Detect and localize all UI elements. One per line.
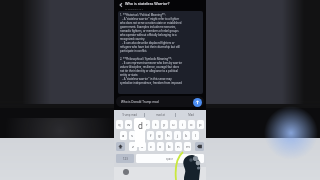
button[interactable]: Back (117, 1, 125, 9)
button[interactable]: r (143, 120, 150, 129)
staticText: b (168, 144, 171, 150)
staticText: recognized country. (120, 37, 145, 41)
staticText: nomadic fighters, or members of rebel gr… (120, 29, 179, 33)
button[interactable]: Send (193, 98, 202, 107)
staticText: v (159, 144, 162, 150)
staticText: - It can also describe displaced fighter… (120, 41, 175, 45)
staticText: - A "stateless warrior" might refer to a… (120, 17, 180, 21)
staticText: values (discipline, resilience, courage)… (120, 65, 180, 69)
button[interactable]: e (134, 120, 141, 129)
button[interactable]: b (166, 142, 173, 151)
staticText: t (155, 122, 157, 128)
button[interactable]: 123 (116, 154, 134, 163)
staticText: z (132, 144, 134, 150)
staticText: e (136, 122, 139, 128)
button[interactable]: n (175, 142, 182, 151)
staticText: w (127, 122, 131, 128)
staticText: u (172, 122, 175, 128)
staticText: entity or state. (120, 73, 139, 77)
button[interactable]: y (161, 120, 168, 129)
staticText: not tie their identity or allegiance to … (120, 69, 178, 73)
button[interactable]: h (165, 131, 172, 140)
staticText: q (118, 122, 121, 128)
button[interactable]: i (179, 120, 186, 129)
button[interactable]: k (183, 131, 190, 140)
staticText: m (186, 144, 190, 150)
staticText: space (166, 157, 174, 161)
staticText: k (185, 133, 188, 139)
staticText: p (199, 122, 202, 128)
staticText: r (146, 122, 148, 128)
button[interactable]: a (120, 131, 127, 140)
button[interactable]: p (197, 120, 204, 129)
button[interactable]: t (152, 120, 159, 129)
staticText: a (122, 133, 125, 139)
staticText: x (141, 144, 144, 150)
button[interactable]: j (174, 131, 181, 140)
staticText: Trump mad (122, 113, 137, 117)
staticText: i (182, 122, 184, 128)
staticText: mad at (156, 113, 165, 117)
staticText: AI assistant v2.4 (125, 7, 144, 10)
staticText: h (167, 133, 170, 139)
staticText: l (195, 133, 197, 139)
button[interactable]: v (157, 142, 164, 151)
button[interactable]: f (147, 131, 154, 140)
staticText: 1. **Historical / Political Meaning**: (120, 13, 166, 17)
staticText: who operate without officially belonging… (120, 33, 177, 37)
staticText: g (158, 133, 161, 139)
button[interactable]: Mad (176, 110, 206, 119)
button[interactable]: Trump mad (114, 110, 144, 119)
staticText: government. Examples include mercenaries… (120, 25, 176, 29)
staticText: Who is Donald Trump mad (121, 100, 159, 104)
staticText: 2. **Philosophical / Symbolic Meaning**: (120, 57, 172, 61)
staticText: participate in conflict. (120, 49, 148, 53)
staticText: c (150, 144, 153, 150)
staticText: Mad (188, 113, 194, 117)
button[interactable]: m (184, 142, 191, 151)
staticText: f (150, 133, 152, 139)
staticText: n (177, 144, 180, 150)
button[interactable]: Shift (116, 142, 125, 151)
button[interactable]: s (129, 131, 136, 140)
button[interactable]: o (188, 120, 195, 129)
button[interactable]: u (170, 120, 177, 129)
button[interactable]: x (139, 142, 146, 151)
button[interactable]: space (136, 154, 204, 163)
button[interactable]: l (192, 131, 199, 140)
staticText: symbolize independence, freedom from imp… (120, 81, 182, 85)
staticText: o (190, 122, 193, 128)
staticText: Who is stateless Warrior? (125, 1, 170, 6)
staticText: d (138, 120, 143, 131)
staticText: j (177, 133, 179, 139)
button[interactable]: Backspace (195, 142, 204, 151)
staticText: - A "stateless warrior" in this sense ma… (120, 77, 172, 81)
staticText: 123 (123, 157, 128, 161)
button[interactable]: z (129, 142, 137, 151)
staticText: y (163, 122, 166, 128)
button[interactable]: mad at (145, 110, 175, 119)
staticText: - It can represent someone who lives by … (120, 61, 183, 65)
button[interactable]: q (116, 120, 123, 129)
button[interactable]: c (148, 142, 155, 151)
staticText: s (131, 133, 134, 139)
button[interactable]: 1. **Historical / Political Meaning**: (118, 11, 203, 94)
button[interactable]: w (125, 120, 132, 129)
button[interactable] (116, 96, 204, 107)
staticText: refugees who have lost their citizenship… (120, 45, 180, 49)
staticText: who does not serve a nation-state or est… (120, 21, 182, 25)
button[interactable]: g (156, 131, 163, 140)
button[interactable]: Assistant (123, 169, 129, 175)
